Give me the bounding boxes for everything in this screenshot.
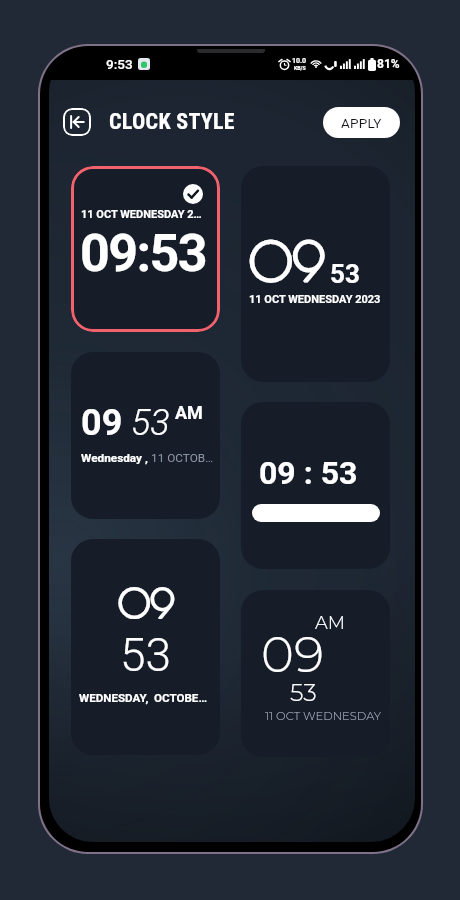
- button[interactable]: 09: [241, 166, 390, 382]
- staticText: KB/S: [294, 65, 306, 71]
- staticText: 11 OCT WEDNESDAY 2023: [249, 293, 381, 306]
- staticText: 09 : 53: [259, 454, 358, 492]
- staticText: 53: [290, 678, 317, 707]
- staticText: 09: [118, 581, 175, 625]
- staticText: AM: [175, 402, 203, 423]
- staticText: 11 OCT WEDNESDAY 2…: [81, 208, 202, 221]
- staticText: 09: [249, 232, 325, 292]
- staticText: 11 OCT WEDNESDAY: [265, 709, 381, 723]
- staticText: 09: [81, 402, 123, 444]
- staticText: 09: [118, 581, 175, 625]
- staticText: 09: [249, 232, 325, 292]
- button[interactable]: AM: [241, 590, 390, 757]
- staticText: Wednesday ,: [81, 451, 151, 465]
- button[interactable]: 09: [71, 539, 220, 755]
- staticText: WEDNESDAY, OCTOBE…: [79, 691, 207, 705]
- staticText: 53: [330, 259, 360, 289]
- staticText: 09: [261, 624, 324, 685]
- button[interactable]: 09: [71, 352, 220, 519]
- staticText: 10.0: [292, 57, 307, 65]
- button[interactable]: 09 : 53: [241, 402, 390, 569]
- staticText: 09:53: [80, 223, 206, 284]
- staticText: 81%: [377, 57, 400, 71]
- button[interactable]: Back: [63, 108, 91, 136]
- staticText: 11 OCTOB…: [151, 451, 214, 465]
- staticText: APPLY: [341, 115, 382, 131]
- button[interactable]: 11 OCT WEDNESDAY 2…: [71, 166, 220, 332]
- staticText: AM: [315, 612, 345, 634]
- staticText: 53: [131, 402, 170, 444]
- staticText: 9:53: [106, 56, 133, 72]
- button[interactable]: APPLY: [323, 107, 400, 138]
- staticText: CLOCK STYLE: [109, 109, 235, 135]
- staticText: 53: [120, 628, 172, 682]
